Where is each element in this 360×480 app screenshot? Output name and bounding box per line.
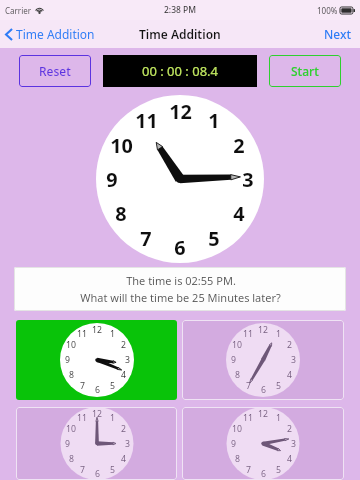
staticText: 5 — [276, 464, 281, 476]
staticText: 10 — [232, 423, 242, 435]
staticText: 1 — [110, 328, 115, 340]
staticText: 12 — [258, 408, 268, 420]
staticText: 1 — [276, 412, 281, 424]
staticText: 12 — [92, 324, 102, 336]
staticText: 8 — [69, 369, 74, 381]
staticText: 11 — [77, 328, 87, 340]
staticText: 7 — [246, 464, 251, 476]
staticText: 100% — [317, 5, 338, 16]
staticText: 1 — [208, 107, 220, 134]
staticText: 2 — [233, 132, 245, 159]
staticText: 1 — [276, 328, 281, 340]
staticText: 11 — [243, 412, 253, 424]
staticText: 6 — [174, 234, 186, 261]
staticText: 7 — [140, 225, 152, 252]
button[interactable]: Start — [269, 55, 341, 87]
staticText: 10 — [232, 339, 242, 351]
staticText: 9 — [65, 354, 70, 366]
staticText: 4 — [233, 200, 245, 227]
button[interactable]: Clock answer choice — [16, 407, 177, 480]
staticText: 7 — [80, 464, 85, 476]
staticText: Start — [291, 63, 319, 79]
button[interactable]: Time Addition — [0, 21, 103, 47]
button[interactable]: Reset — [19, 55, 91, 87]
staticText: 2:38 PM — [164, 4, 197, 16]
staticText: 4 — [287, 369, 292, 381]
staticText: 8 — [115, 200, 127, 227]
staticText: 10 — [66, 423, 76, 435]
staticText: 12 — [258, 324, 268, 336]
staticText: Time Addition — [139, 26, 221, 42]
staticText: 2 — [121, 423, 126, 435]
staticText: 3 — [125, 354, 130, 366]
button[interactable]: Clock answer choice — [182, 320, 344, 400]
staticText: Carrier — [5, 5, 32, 16]
staticText: 5 — [208, 225, 220, 252]
staticText: 4 — [121, 453, 126, 465]
staticText: 12 — [92, 408, 102, 420]
staticText: 6 — [95, 384, 100, 396]
staticText: 11 — [135, 107, 158, 134]
staticText: 6 — [261, 384, 266, 396]
staticText: 9 — [231, 354, 236, 366]
staticText: 12 — [169, 98, 192, 125]
staticText: 8 — [69, 453, 74, 465]
staticText: 4 — [287, 453, 292, 465]
staticText: Reset — [39, 63, 71, 79]
staticText: Next — [324, 26, 352, 42]
button[interactable]: Clock answer choice — [16, 320, 177, 400]
staticText: 10 — [110, 132, 133, 159]
staticText: 11 — [77, 412, 87, 424]
staticText: 5 — [110, 380, 115, 392]
staticText: 5 — [110, 464, 115, 476]
staticText: 7 — [246, 380, 251, 392]
staticText: The time is 02:55 PM. — [126, 273, 236, 288]
staticText: Time Addition — [16, 26, 95, 42]
staticText: 5 — [276, 380, 281, 392]
staticText: 2 — [121, 339, 126, 351]
staticText: 3 — [291, 354, 296, 366]
staticText: 3 — [291, 438, 296, 450]
staticText: 9 — [106, 166, 118, 193]
staticText: 6 — [261, 468, 266, 480]
staticText: 6 — [95, 468, 100, 480]
staticText: 3 — [242, 166, 254, 193]
staticText: 2 — [287, 423, 292, 435]
staticText: 00 : 00 : 08.4 — [142, 62, 219, 80]
staticText: 10 — [66, 339, 76, 351]
staticText: 8 — [235, 369, 240, 381]
staticText: 2 — [287, 339, 292, 351]
staticText: 7 — [80, 380, 85, 392]
staticText: 1 — [110, 412, 115, 424]
staticText: 4 — [121, 369, 126, 381]
button[interactable]: Next — [316, 21, 360, 47]
staticText: 9 — [65, 438, 70, 450]
staticText: What will the time be 25 Minutes later? — [80, 290, 281, 305]
staticText: 3 — [125, 438, 130, 450]
button[interactable]: Clock answer choice — [182, 407, 344, 480]
staticText: 8 — [235, 453, 240, 465]
staticText: 9 — [231, 438, 236, 450]
staticText: 11 — [243, 328, 253, 340]
